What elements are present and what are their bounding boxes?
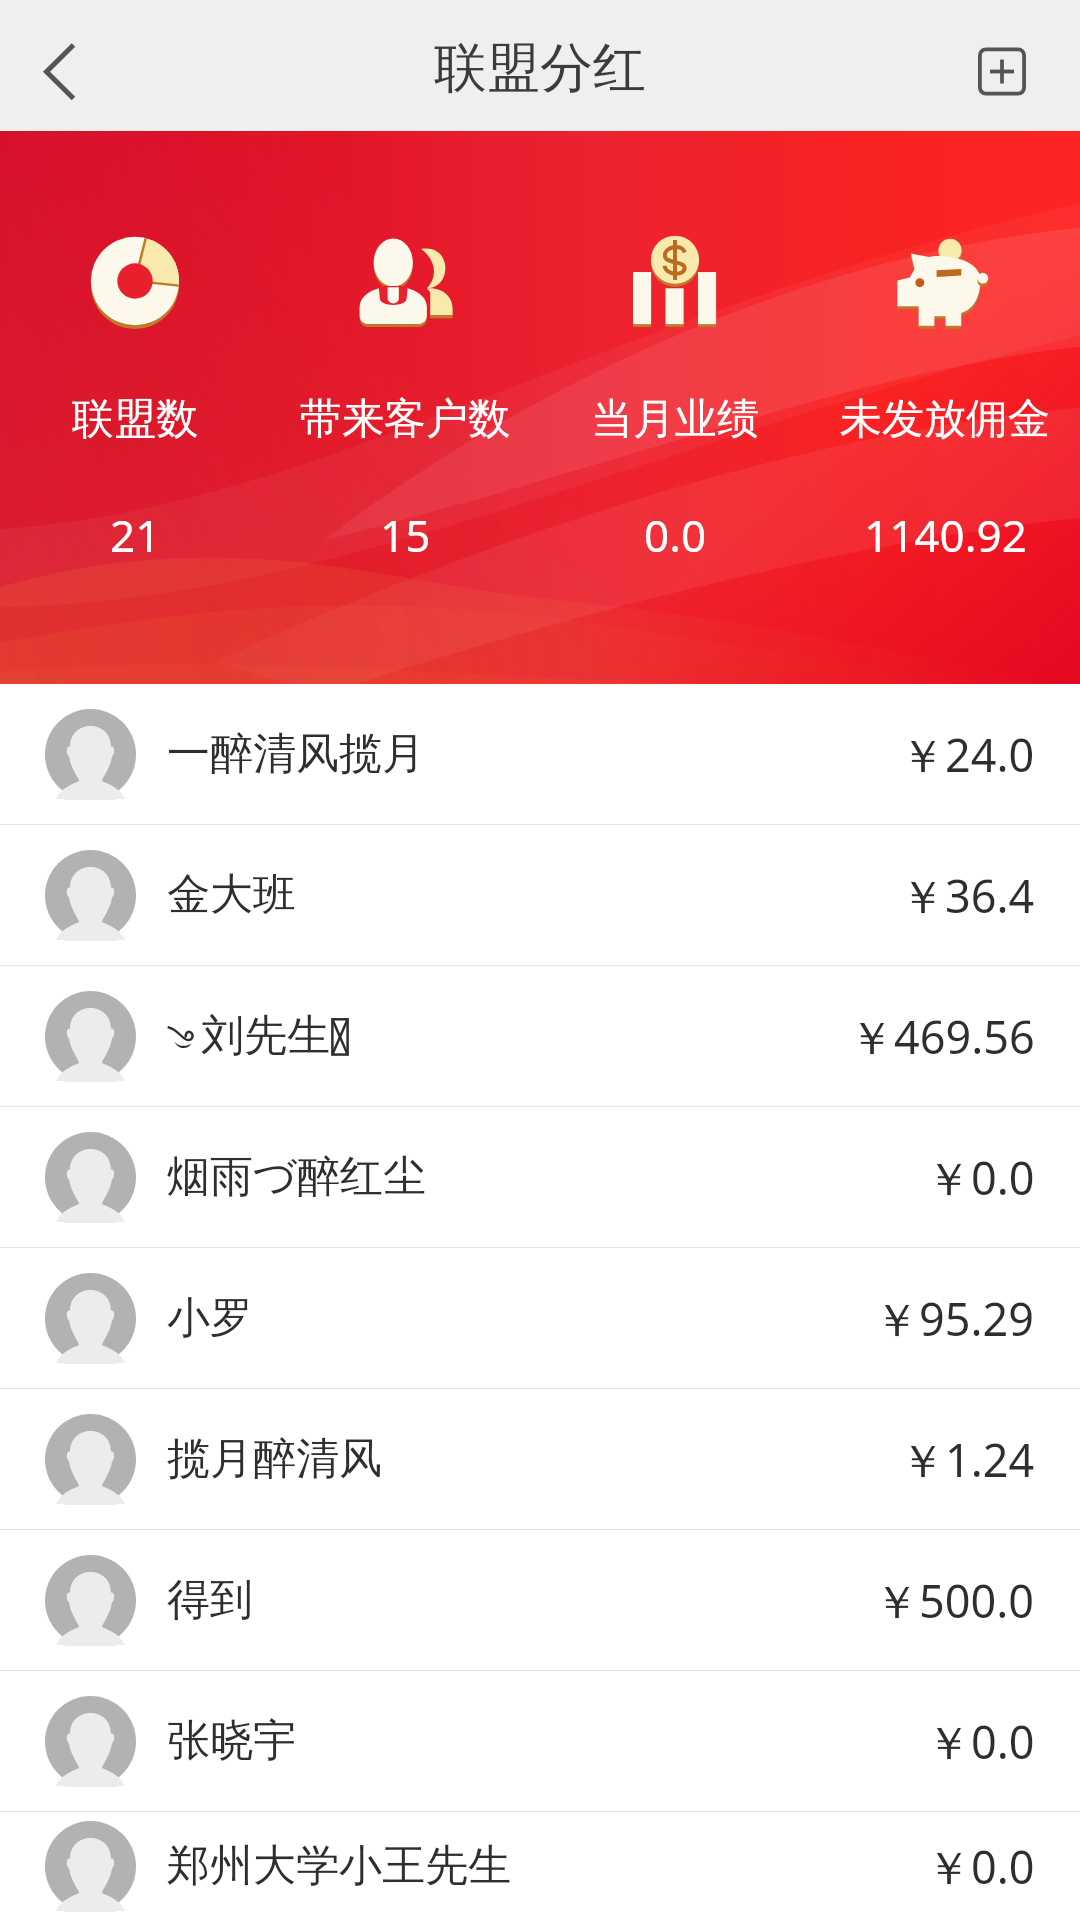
button[interactable]: 联盟数 xyxy=(0,216,270,346)
button[interactable]: 一醉清风揽月 xyxy=(0,684,1080,824)
staticText: 金大班 xyxy=(167,868,296,922)
staticText: ￥500.0 xyxy=(874,1570,1035,1631)
button[interactable]: 刘先生 xyxy=(0,966,1080,1106)
button[interactable]: Add xyxy=(978,0,1080,131)
button[interactable]: 烟雨づ醉红尘 xyxy=(0,1107,1080,1247)
staticText: 带来客户数 xyxy=(300,393,510,446)
staticText: 21 xyxy=(110,505,161,565)
staticText: 烟雨づ醉红尘 xyxy=(167,1150,427,1204)
staticText: 1140.92 xyxy=(864,505,1027,565)
staticText: 小罗 xyxy=(167,1291,253,1345)
button[interactable]: 未发放佣金 xyxy=(810,216,1080,346)
staticText: 未发放佣金 xyxy=(840,393,1050,446)
staticText: 0.0 xyxy=(644,505,707,565)
staticText: 联盟数 xyxy=(72,393,198,446)
button[interactable]: 带来客户数 xyxy=(270,216,540,346)
button[interactable]: 揽月醉清风 xyxy=(0,1389,1080,1529)
button[interactable]: 小罗 xyxy=(0,1248,1080,1388)
staticText: 联盟分红 xyxy=(434,35,646,102)
staticText: ￥469.56 xyxy=(849,1006,1035,1067)
staticText: 张晓宇 xyxy=(167,1714,296,1768)
staticText: ￥95.29 xyxy=(874,1288,1035,1349)
staticText: ￥0.0 xyxy=(926,1711,1035,1772)
button[interactable]: Back xyxy=(0,0,120,131)
staticText: ￥1.24 xyxy=(900,1429,1035,1490)
staticText: 揽月醉清风 xyxy=(167,1432,382,1486)
staticText: ￥0.0 xyxy=(926,1836,1035,1897)
button[interactable]: 张晓宇 xyxy=(0,1671,1080,1811)
staticText: 15 xyxy=(380,505,431,565)
staticText: 当月业绩 xyxy=(591,393,759,446)
staticText: 一醉清风揽月 xyxy=(167,727,425,781)
staticText: ￥24.0 xyxy=(900,724,1035,785)
staticText: ￥36.4 xyxy=(900,865,1035,926)
button[interactable]: 得到 xyxy=(0,1530,1080,1670)
staticText: 得到 xyxy=(167,1573,253,1627)
staticText: 郑州大学小王先生 xyxy=(167,1839,511,1893)
button[interactable]: 郑州大学小王先生 xyxy=(0,1812,1080,1920)
staticText: 刘先生 xyxy=(201,1009,330,1063)
staticText: ￥0.0 xyxy=(926,1147,1035,1208)
button[interactable]: 当月业绩 xyxy=(540,216,810,346)
button[interactable]: 金大班 xyxy=(0,825,1080,965)
